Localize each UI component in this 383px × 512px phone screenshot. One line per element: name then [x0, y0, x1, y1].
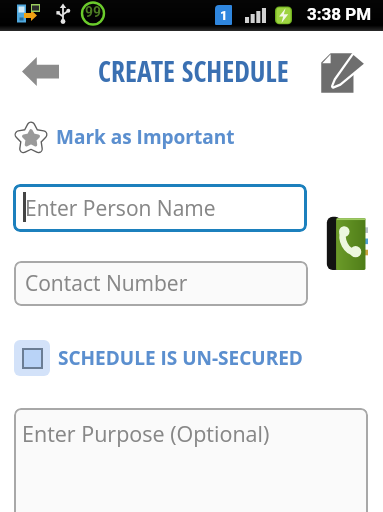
- staticText: Enter Person Name: [25, 194, 216, 223]
- staticText: CREATE SCHEDULE: [98, 52, 289, 90]
- button[interactable]: Mark as Important: [13, 115, 239, 161]
- staticText: 3:38 PM: [307, 4, 372, 24]
- button[interactable]: Contact Number: [14, 261, 308, 306]
- button[interactable]: Enter Person Name: [13, 184, 307, 232]
- button[interactable]: SCHEDULE IS UN-SECURED: [14, 339, 304, 376]
- button[interactable]: Back: [12, 50, 68, 92]
- staticText: Mark as Important: [56, 124, 235, 150]
- button[interactable]: Enter Purpose (Optional): [14, 408, 368, 512]
- staticText: 99: [85, 4, 102, 20]
- staticText: SCHEDULE IS UN-SECURED: [58, 345, 303, 371]
- staticText: 1: [220, 8, 228, 23]
- staticText: Contact Number: [25, 269, 188, 298]
- button[interactable]: Pick contact: [320, 209, 374, 277]
- staticText: Enter Purpose (Optional): [22, 419, 270, 448]
- button[interactable]: Edit: [312, 45, 370, 101]
